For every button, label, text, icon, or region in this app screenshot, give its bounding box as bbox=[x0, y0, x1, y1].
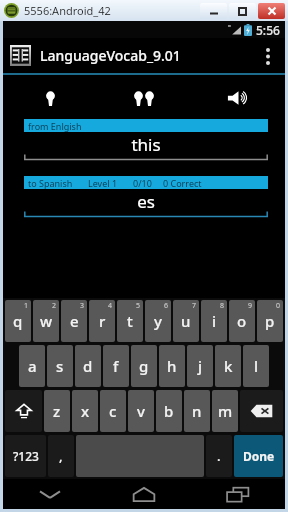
staticText: 0 Correct bbox=[163, 177, 202, 189]
button[interactable]: i bbox=[201, 300, 227, 342]
button[interactable]: More options bbox=[256, 39, 280, 73]
staticText: x bbox=[81, 401, 90, 421]
button[interactable]: h bbox=[159, 345, 185, 387]
button[interactable]: q bbox=[5, 300, 31, 342]
staticText: z bbox=[53, 401, 61, 421]
button[interactable]: b bbox=[156, 390, 182, 432]
staticText: 0 bbox=[276, 301, 281, 311]
staticText: es bbox=[137, 190, 155, 213]
staticText: from Enlgish bbox=[28, 120, 82, 132]
button[interactable]: Backspace bbox=[240, 390, 283, 432]
staticText: y bbox=[154, 311, 162, 331]
staticText: l bbox=[254, 356, 259, 376]
staticText: g bbox=[139, 356, 149, 376]
button[interactable]: u bbox=[173, 300, 199, 342]
staticText: a bbox=[28, 356, 37, 376]
staticText: Done bbox=[243, 448, 275, 464]
button[interactable]: t bbox=[117, 300, 143, 342]
button[interactable]: p bbox=[257, 300, 283, 342]
staticText: q bbox=[13, 311, 23, 331]
staticText: . bbox=[217, 447, 221, 465]
button[interactable]: Hint one bbox=[3, 86, 97, 110]
staticText: to Spanish bbox=[28, 177, 73, 189]
staticText: this bbox=[131, 133, 161, 156]
button[interactable]: n bbox=[184, 390, 210, 432]
staticText: k bbox=[224, 356, 233, 376]
button[interactable]: j bbox=[187, 345, 213, 387]
button[interactable]: l bbox=[243, 345, 269, 387]
button[interactable]: k bbox=[215, 345, 241, 387]
button[interactable]: App icon bbox=[10, 45, 31, 66]
button[interactable]: o bbox=[229, 300, 255, 342]
button[interactable]: Minimize bbox=[200, 3, 227, 19]
button[interactable]: Done bbox=[234, 435, 283, 477]
staticText: 6 bbox=[164, 301, 169, 311]
staticText: d bbox=[83, 356, 93, 376]
staticText: m bbox=[218, 401, 233, 421]
staticText: Level 1 bbox=[88, 177, 118, 189]
staticText: h bbox=[167, 356, 177, 376]
staticText: 5556:Android_42 bbox=[24, 3, 111, 18]
button[interactable]: e bbox=[61, 300, 87, 342]
staticText: j bbox=[198, 356, 203, 376]
staticText: p bbox=[265, 311, 275, 331]
button[interactable]: this bbox=[24, 132, 268, 163]
button[interactable]: , bbox=[48, 435, 74, 477]
button[interactable]: x bbox=[72, 390, 98, 432]
staticText: ?123 bbox=[13, 448, 39, 464]
staticText: 4 bbox=[108, 301, 113, 311]
button[interactable]: . bbox=[206, 435, 232, 477]
staticText: w bbox=[40, 311, 53, 331]
button[interactable]: v bbox=[128, 390, 154, 432]
staticText: v bbox=[137, 401, 145, 421]
button[interactable]: ?123 bbox=[5, 435, 46, 477]
button[interactable]: Close bbox=[258, 3, 285, 19]
button[interactable]: s bbox=[47, 345, 73, 387]
staticText: f bbox=[113, 356, 119, 376]
staticText: e bbox=[70, 311, 79, 331]
button[interactable]: es bbox=[24, 189, 268, 220]
button[interactable]: Hint two bbox=[97, 86, 191, 110]
staticText: 0/10 bbox=[133, 177, 152, 189]
button[interactable]: Hide keyboard bbox=[3, 479, 97, 509]
staticText: , bbox=[59, 447, 63, 465]
button[interactable]: c bbox=[100, 390, 126, 432]
staticText: s bbox=[56, 356, 64, 376]
staticText: b bbox=[164, 401, 174, 421]
button[interactable]: Speak bbox=[191, 86, 285, 110]
button[interactable]: a bbox=[19, 345, 45, 387]
staticText: 2 bbox=[52, 301, 57, 311]
button[interactable]: Recent apps bbox=[191, 479, 285, 509]
staticText: 7 bbox=[192, 301, 197, 311]
staticText: o bbox=[237, 311, 247, 331]
button[interactable]: d bbox=[75, 345, 101, 387]
button[interactable]: w bbox=[33, 300, 59, 342]
staticText: 5:56 bbox=[256, 22, 280, 38]
button[interactable]: Restore bbox=[229, 3, 256, 19]
staticText: r bbox=[99, 311, 106, 331]
staticText: t bbox=[127, 311, 133, 331]
staticText: u bbox=[181, 311, 191, 331]
staticText: 5 bbox=[136, 301, 141, 311]
button[interactable]: m bbox=[212, 390, 238, 432]
button[interactable]: y bbox=[145, 300, 171, 342]
staticText: 1 bbox=[24, 301, 29, 311]
staticText: c bbox=[109, 401, 117, 421]
staticText: LanguageVocab_9.01 bbox=[40, 46, 181, 65]
button[interactable]: Home bbox=[97, 479, 191, 509]
staticText: 8 bbox=[220, 301, 225, 311]
staticText: 3 bbox=[80, 301, 85, 311]
button[interactable]: z bbox=[44, 390, 70, 432]
staticText: n bbox=[192, 401, 202, 421]
button[interactable]: Shift bbox=[5, 390, 42, 432]
button[interactable]: f bbox=[103, 345, 129, 387]
staticText: i bbox=[212, 311, 217, 331]
button[interactable]: r bbox=[89, 300, 115, 342]
staticText: 9 bbox=[248, 301, 253, 311]
button[interactable]: g bbox=[131, 345, 157, 387]
